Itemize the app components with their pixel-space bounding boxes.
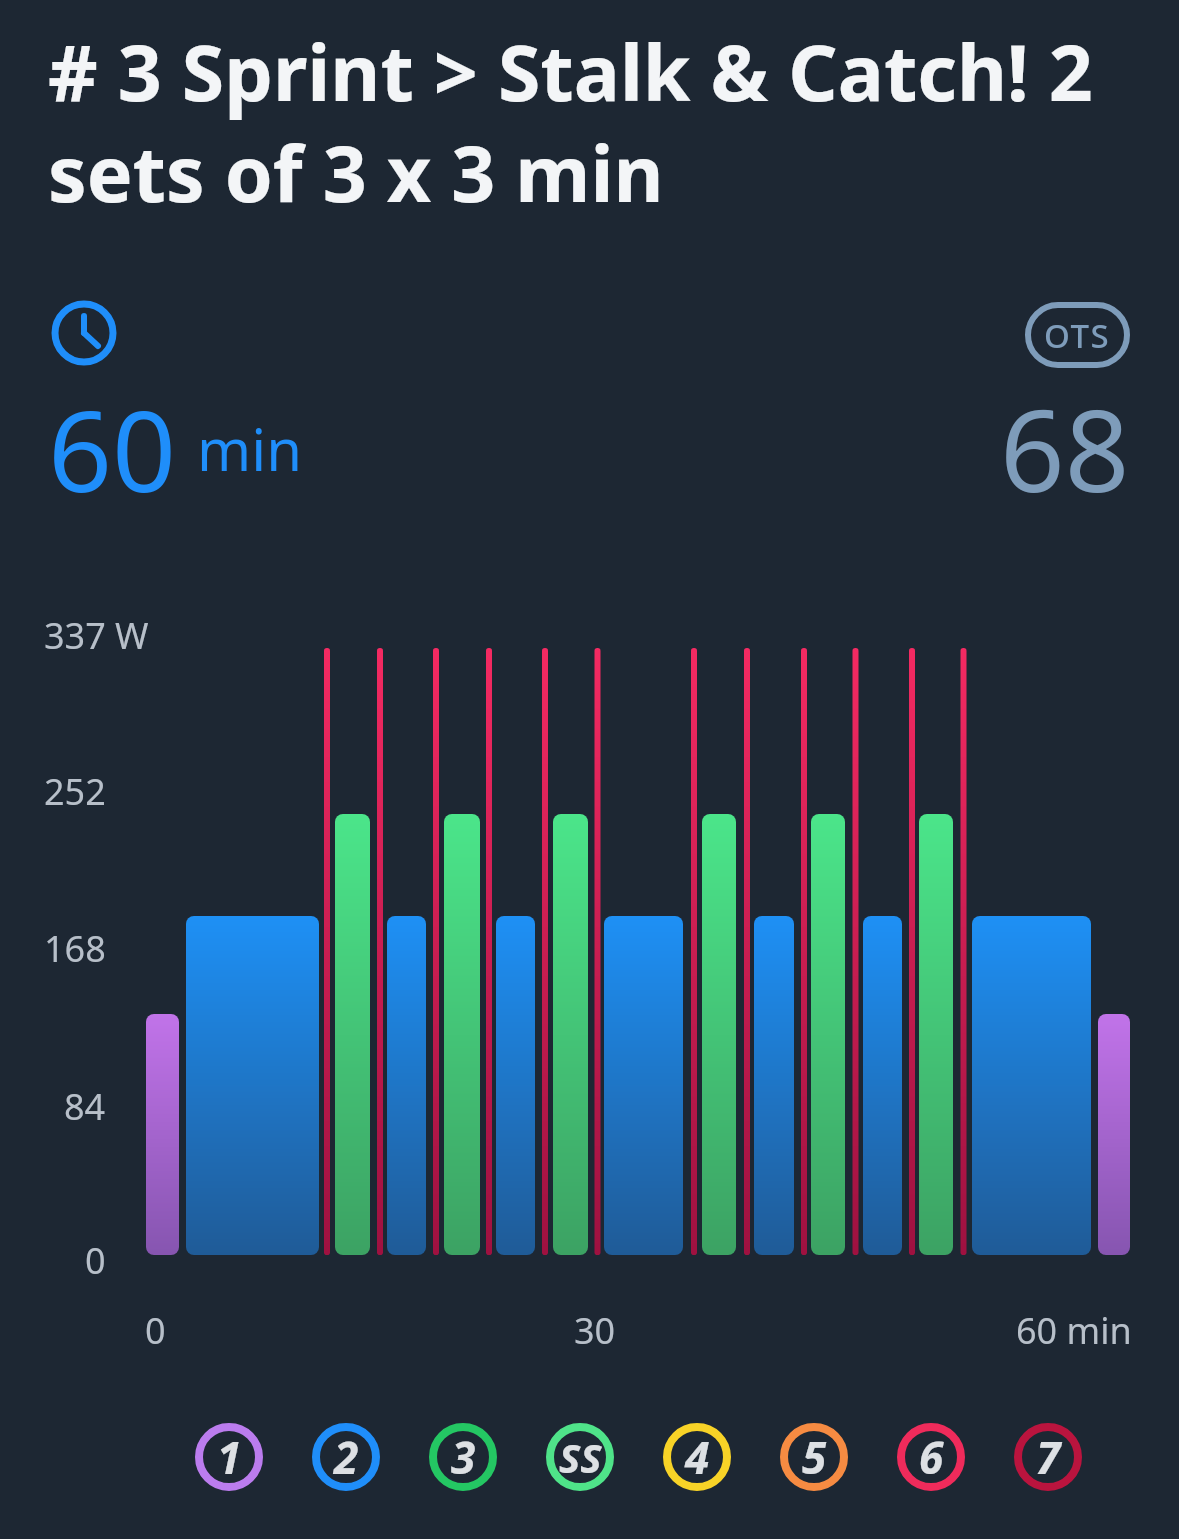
- staticText: 0: [145, 1306, 166, 1355]
- staticText: 2: [334, 1427, 359, 1487]
- button[interactable]: 1: [195, 1423, 263, 1491]
- staticText: 6: [919, 1427, 944, 1487]
- staticText: SS: [559, 1430, 602, 1484]
- staticText: 68: [1000, 371, 1130, 525]
- button[interactable]: 2: [312, 1423, 380, 1491]
- staticText: 168: [44, 924, 106, 973]
- staticText: # 3 Sprint > Stalk & Catch! 2 sets of 3 …: [48, 19, 1093, 225]
- button[interactable]: 6: [897, 1423, 965, 1491]
- staticText: 3: [451, 1427, 476, 1487]
- button[interactable]: OTS: [1025, 302, 1130, 368]
- staticText: 0: [85, 1236, 106, 1285]
- staticText: min: [197, 409, 303, 488]
- staticText: OTS: [1044, 313, 1111, 358]
- staticText: 84: [64, 1082, 106, 1131]
- staticText: 60: [48, 372, 177, 525]
- staticText: W: [115, 611, 149, 660]
- staticText: 337: [44, 611, 106, 660]
- button[interactable]: 7: [1014, 1423, 1082, 1491]
- staticText: 7: [1036, 1427, 1061, 1487]
- staticText: 1: [217, 1427, 242, 1487]
- staticText: 4: [685, 1427, 710, 1487]
- button[interactable]: 5: [780, 1423, 848, 1491]
- staticText: 5: [802, 1427, 827, 1487]
- button[interactable]: 3: [429, 1423, 497, 1491]
- staticText: 252: [44, 767, 106, 816]
- staticText: 60 min: [1016, 1306, 1132, 1355]
- button[interactable]: 4: [663, 1423, 731, 1491]
- staticText: 30: [574, 1306, 616, 1355]
- button[interactable]: SS: [546, 1423, 614, 1491]
